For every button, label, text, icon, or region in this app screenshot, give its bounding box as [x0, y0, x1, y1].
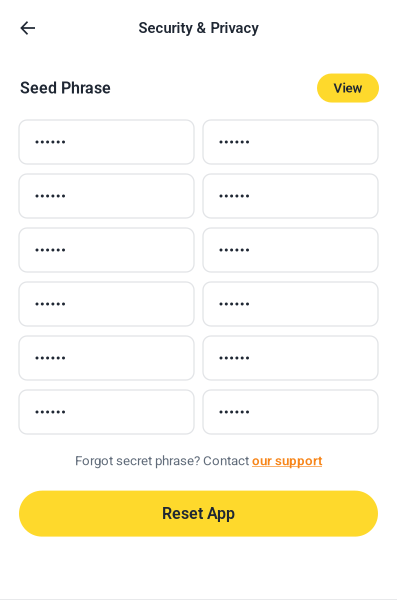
staticText: Forgot secret phrase? Contact	[75, 453, 252, 469]
button[interactable]: our support	[252, 453, 322, 469]
button[interactable]: Reset App	[19, 491, 378, 537]
staticText: our support	[252, 453, 322, 469]
staticText: Seed Phrase	[20, 79, 111, 97]
button[interactable]: View	[317, 73, 379, 102]
staticText: Security & Privacy	[138, 19, 258, 37]
staticText: Reset App	[162, 504, 235, 523]
button[interactable]: Back	[11, 11, 45, 45]
staticText: View	[333, 80, 362, 96]
